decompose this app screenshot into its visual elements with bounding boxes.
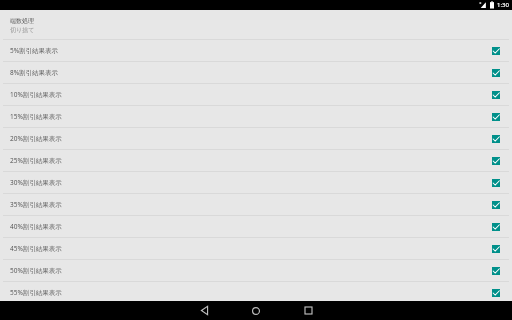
button[interactable]: 40%割引結果表示 — [0, 216, 512, 237]
staticText: 8%割引結果表示 — [10, 68, 59, 77]
button[interactable]: 5%割引結果表示 チェックボックス — [488, 40, 504, 61]
button[interactable]: 45%割引結果表示 チェックボックス — [488, 238, 504, 259]
button[interactable]: 20%割引結果表示 チェックボックス — [488, 128, 504, 149]
button[interactable]: 55%割引結果表示 — [0, 282, 512, 303]
staticText: 1:30 — [497, 1, 509, 9]
button[interactable]: 45%割引結果表示 — [0, 238, 512, 259]
staticText: 20%割引結果表示 — [10, 134, 62, 143]
button[interactable]: 20%割引結果表示 — [0, 128, 512, 149]
staticText: 55%割引結果表示 — [10, 288, 62, 297]
button[interactable]: 15%割引結果表示 — [0, 106, 512, 127]
staticText: 30%割引結果表示 — [10, 178, 62, 187]
button[interactable]: 8%割引結果表示 チェックボックス — [488, 62, 504, 83]
button[interactable]: Back — [178, 301, 230, 320]
staticText: 端数処理 — [10, 17, 34, 25]
staticText: 25%割引結果表示 — [10, 156, 62, 165]
button[interactable]: 10%割引結果表示 チェックボックス — [488, 84, 504, 105]
button[interactable]: 8%割引結果表示 — [0, 62, 512, 83]
button[interactable]: 25%割引結果表示 — [0, 150, 512, 171]
staticText: 35%割引結果表示 — [10, 200, 62, 209]
staticText: 50%割引結果表示 — [10, 266, 62, 275]
button[interactable]: 30%割引結果表示 チェックボックス — [488, 172, 504, 193]
button[interactable]: 30%割引結果表示 — [0, 172, 512, 193]
staticText: 10%割引結果表示 — [10, 90, 62, 99]
button[interactable]: Recents — [282, 301, 334, 320]
button[interactable]: 35%割引結果表示 — [0, 194, 512, 215]
button[interactable]: 50%割引結果表示 チェックボックス — [488, 260, 504, 281]
button[interactable]: 50%割引結果表示 — [0, 260, 512, 281]
button[interactable]: 5%割引結果表示 — [0, 40, 512, 61]
button[interactable]: 40%割引結果表示 チェックボックス — [488, 216, 504, 237]
staticText: 切り捨て — [10, 26, 35, 34]
button[interactable]: 25%割引結果表示 チェックボックス — [488, 150, 504, 171]
button[interactable]: 55%割引結果表示 チェックボックス — [488, 282, 504, 303]
staticText: 15%割引結果表示 — [10, 112, 62, 121]
button[interactable]: 10%割引結果表示 — [0, 84, 512, 105]
staticText: 45%割引結果表示 — [10, 244, 62, 253]
button[interactable]: Home — [230, 301, 282, 320]
staticText: 40%割引結果表示 — [10, 222, 62, 231]
staticText: 5%割引結果表示 — [10, 46, 59, 55]
button[interactable]: 35%割引結果表示 チェックボックス — [488, 194, 504, 215]
button[interactable]: 15%割引結果表示 チェックボックス — [488, 106, 504, 127]
